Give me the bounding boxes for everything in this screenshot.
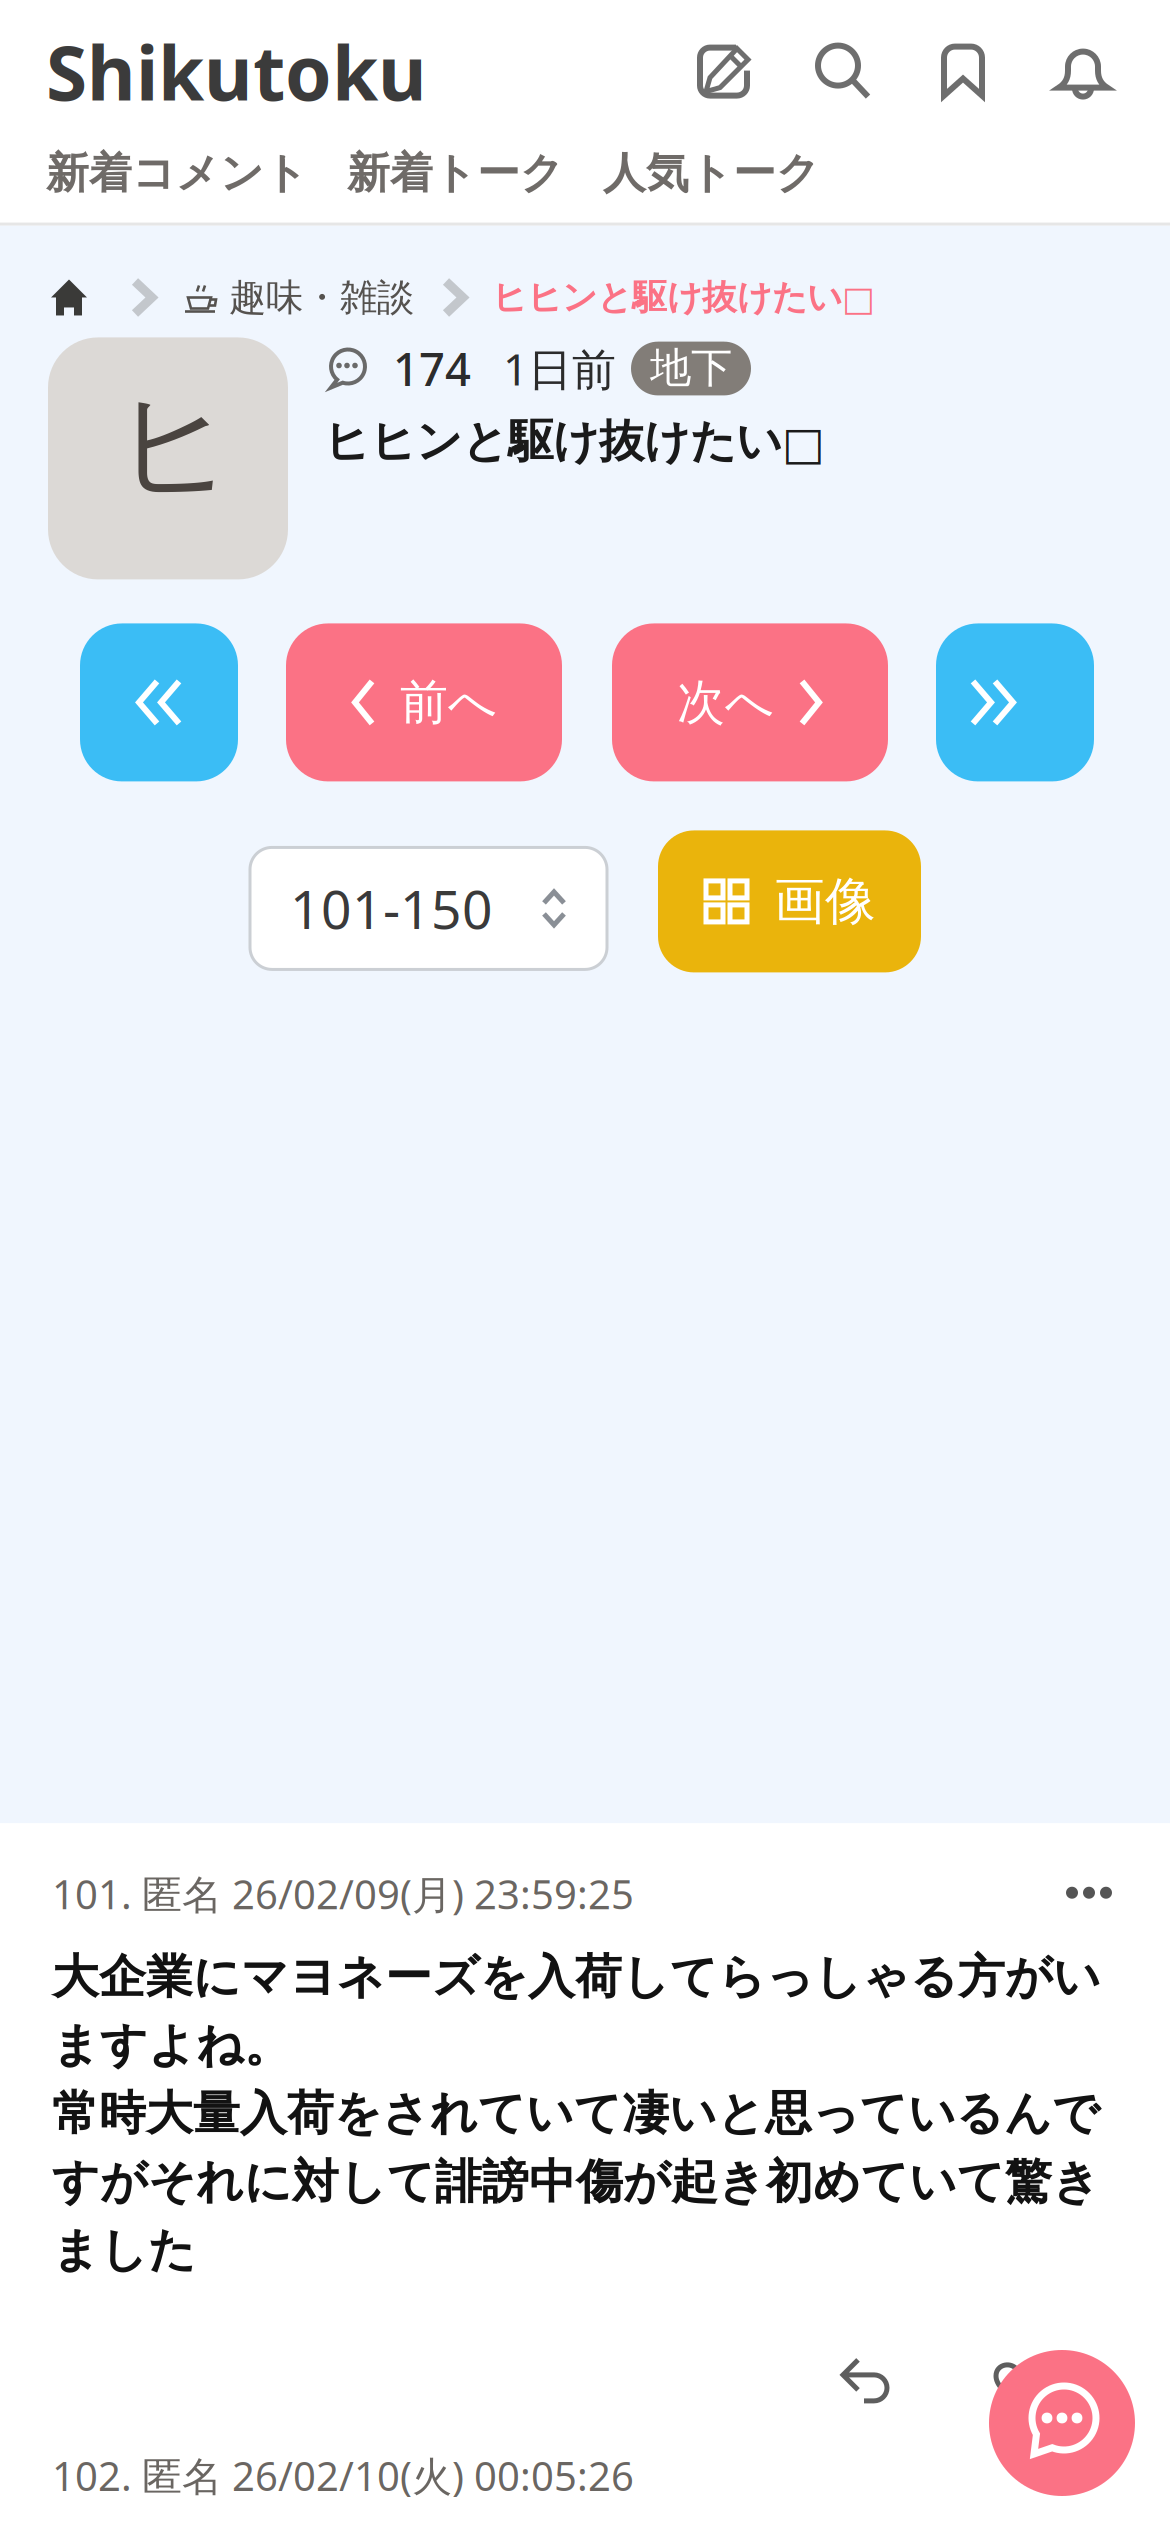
button[interactable]: ヒヒンと駆け抜けたい□ <box>492 276 875 319</box>
button[interactable]: Home <box>50 277 88 317</box>
staticText: 1日前 <box>503 339 616 398</box>
button[interactable]: 次へ <box>612 623 888 781</box>
staticText: 102. 匿名 26/02/10(火) 00:05:26 <box>52 2449 634 2502</box>
staticText: 次へ <box>677 673 774 732</box>
button[interactable]: More options <box>1066 1887 1112 1901</box>
staticText: 前へ <box>400 673 497 732</box>
staticText: 地下 <box>650 343 732 393</box>
button[interactable]: 前へ <box>286 623 562 781</box>
staticText: ヒ <box>115 372 235 516</box>
button[interactable]: 画像 <box>658 830 921 972</box>
button[interactable]: Like <box>992 2357 1044 2407</box>
button[interactable]: Compose <box>692 41 754 103</box>
button[interactable]: Notifications <box>1052 41 1114 103</box>
button[interactable]: First page <box>80 623 238 781</box>
staticText: 人気トーク <box>603 147 820 200</box>
staticText: 大企業にマヨネーズを入荷してらっしゃる方がいますよね。 常時大量入荷をされていて… <box>52 1948 1101 2279</box>
button[interactable]: 新着トーク <box>347 147 564 200</box>
staticText: 画像 <box>774 870 876 932</box>
button[interactable]: 新着コメント <box>46 147 308 200</box>
button[interactable]: Bookmarks <box>932 41 994 103</box>
staticText: 新着トーク <box>347 147 564 200</box>
staticText: 趣味・雑談 <box>229 275 414 320</box>
button[interactable]: Reply <box>840 2356 894 2408</box>
staticText: Shikutoku <box>46 22 427 121</box>
button[interactable]: New comment <box>989 2350 1135 2496</box>
staticText: 174 <box>393 338 471 399</box>
button[interactable]: Search <box>812 41 874 103</box>
button[interactable]: 101-150 <box>250 840 607 962</box>
staticText: 101. 匿名 26/02/09(月) 23:59:25 <box>52 1867 634 1920</box>
staticText: 101-150 <box>290 873 493 944</box>
button[interactable]: 趣味・雑談 <box>183 275 414 320</box>
staticText: ヒヒンと駆け抜けたい□ <box>324 414 825 469</box>
staticText: ヒヒンと駆け抜けたい□ <box>492 276 875 319</box>
button[interactable]: 人気トーク <box>603 147 820 200</box>
button[interactable]: Last page <box>936 623 1094 781</box>
staticText: 新着コメント <box>46 147 308 200</box>
